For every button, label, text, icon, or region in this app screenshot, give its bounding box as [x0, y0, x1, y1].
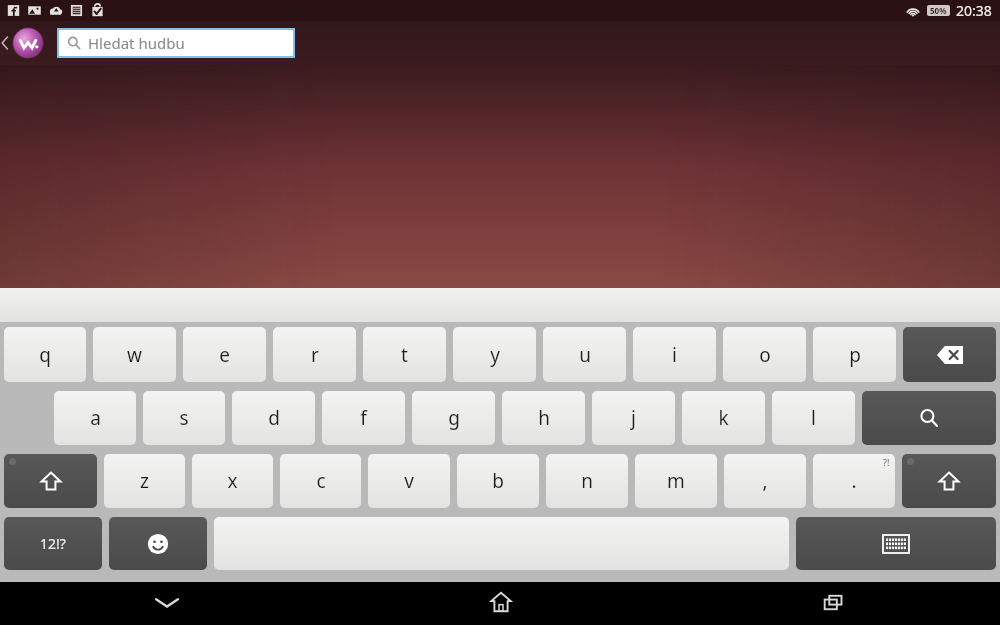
button[interactable]: j: [592, 391, 675, 445]
button[interactable]: m: [635, 454, 717, 508]
button[interactable]: Space: [214, 517, 789, 570]
staticText: j: [631, 405, 636, 431]
button[interactable]: .: [813, 454, 895, 508]
button[interactable]: y: [453, 327, 536, 382]
staticText: 50%: [930, 5, 947, 16]
staticText: r: [311, 342, 319, 368]
button[interactable]: g: [412, 391, 495, 445]
button[interactable]: x: [192, 454, 273, 508]
button[interactable]: i: [633, 327, 716, 382]
button[interactable]: Hledat hudbu: [59, 30, 293, 56]
button[interactable]: f: [322, 391, 405, 445]
staticText: w: [127, 342, 142, 368]
staticText: a: [90, 405, 101, 431]
staticText: b: [492, 468, 504, 494]
staticText: m: [667, 468, 685, 494]
staticText: i: [672, 342, 677, 368]
staticText: .: [851, 468, 857, 494]
button[interactable]: Back: [0, 21, 10, 65]
staticText: f: [360, 405, 367, 431]
button[interactable]: a: [54, 391, 136, 445]
staticText: ,: [762, 468, 768, 494]
button[interactable]: r: [273, 327, 356, 382]
button[interactable]: o: [723, 327, 806, 382]
staticText: c: [316, 468, 326, 494]
staticText: o: [759, 342, 771, 368]
button[interactable]: v: [368, 454, 450, 508]
button[interactable]: c: [280, 454, 361, 508]
button[interactable]: Home: [334, 582, 667, 622]
staticText: y: [490, 342, 500, 368]
button[interactable]: [0, 288, 1000, 322]
button[interactable]: Recents: [667, 582, 1000, 622]
staticText: t: [401, 342, 408, 368]
staticText: k: [718, 405, 729, 431]
button[interactable]: Shift: [902, 454, 996, 508]
button[interactable]: e: [183, 327, 266, 382]
button[interactable]: l: [772, 391, 855, 445]
button[interactable]: d: [232, 391, 315, 445]
staticText: 20:38: [956, 1, 992, 20]
staticText: Hledat hudbu: [88, 33, 185, 53]
staticText: n: [581, 468, 593, 494]
staticText: x: [227, 468, 238, 494]
button[interactable]: Walkman: [11, 26, 45, 60]
staticText: q: [39, 342, 51, 368]
button[interactable]: Hide keyboard: [0, 582, 334, 622]
button[interactable]: s: [143, 391, 225, 445]
button[interactable]: z: [104, 454, 185, 508]
button[interactable]: Switch keyboard: [796, 517, 996, 570]
button[interactable]: 12!?: [4, 517, 102, 570]
button[interactable]: Emoji: [109, 517, 207, 570]
button[interactable]: q: [4, 327, 86, 382]
staticText: d: [268, 405, 280, 431]
button[interactable]: h: [502, 391, 585, 445]
button[interactable]: Shift: [4, 454, 97, 508]
staticText: p: [849, 342, 861, 368]
staticText: v: [404, 468, 414, 494]
button[interactable]: p: [813, 327, 896, 382]
button[interactable]: t: [363, 327, 446, 382]
staticText: s: [179, 405, 189, 431]
button[interactable]: u: [543, 327, 626, 382]
staticText: ?!: [883, 456, 890, 468]
staticText: u: [579, 342, 591, 368]
staticText: g: [448, 405, 460, 431]
button[interactable]: Backspace: [903, 327, 996, 382]
staticText: h: [538, 405, 550, 431]
button[interactable]: w: [93, 327, 176, 382]
staticText: e: [219, 342, 230, 368]
button[interactable]: n: [546, 454, 628, 508]
button[interactable]: Search: [862, 391, 996, 445]
button[interactable]: k: [682, 391, 765, 445]
button[interactable]: b: [457, 454, 539, 508]
staticText: 12!?: [40, 534, 66, 553]
staticText: z: [140, 468, 149, 494]
staticText: l: [811, 405, 816, 431]
button[interactable]: ,: [724, 454, 806, 508]
